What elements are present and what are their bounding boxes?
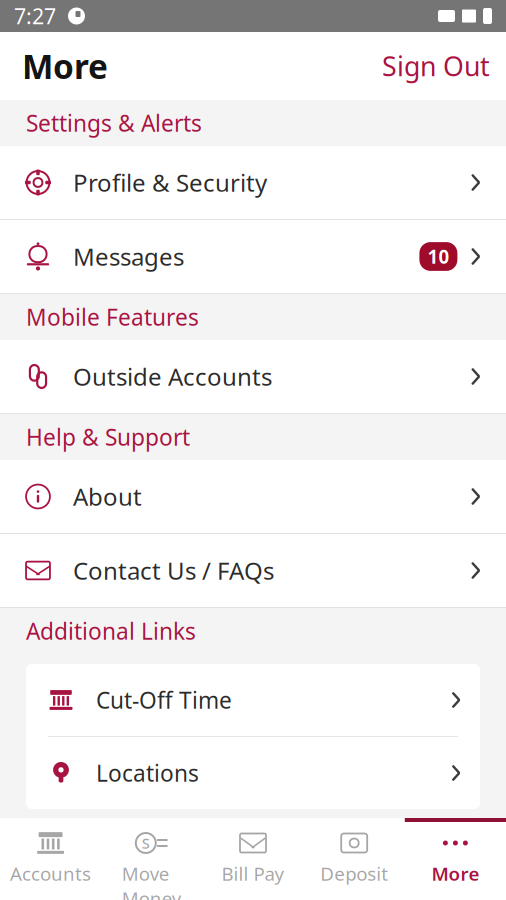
button[interactable]: Deposit [304,818,405,900]
staticText: 10 [427,244,449,269]
staticText: Settings & Alerts [26,108,202,138]
staticText: Accounts [10,861,91,886]
staticText: Outside Accounts [73,361,272,392]
button[interactable]: Cut-Off Time [26,664,480,737]
button[interactable]: Messages [0,220,506,294]
staticText: Contact Us / FAQs [73,555,274,586]
staticText: Profile & Security [73,167,267,198]
staticText: Messages [73,241,184,272]
staticText: Bill Pay [221,861,284,886]
staticText: Help & Support [26,422,190,452]
button[interactable]: Profile & Security [0,146,506,220]
staticText: Deposit [320,861,388,886]
staticText: More [431,861,479,886]
button[interactable]: Bill Pay [202,818,304,900]
staticText: Cut-Off Time [96,685,232,715]
button[interactable]: About [0,460,506,534]
button[interactable]: More [405,818,506,900]
staticText: Additional Links [26,616,196,646]
button[interactable]: Locations [26,737,480,809]
staticText: Sign Out [382,48,490,84]
button[interactable]: S [101,818,202,900]
staticText: 7:27 [14,2,56,30]
staticText: About [73,481,142,512]
staticText: Mobile Features [26,302,199,332]
staticText: Move Money [122,861,182,900]
button[interactable]: Contact Us / FAQs [0,534,506,608]
button[interactable]: Outside Accounts [0,340,506,414]
staticText: S [142,833,150,853]
button[interactable]: Accounts [0,818,101,900]
button[interactable]: Sign Out [382,40,506,92]
staticText: More [22,44,108,88]
staticText: Locations [96,758,199,788]
